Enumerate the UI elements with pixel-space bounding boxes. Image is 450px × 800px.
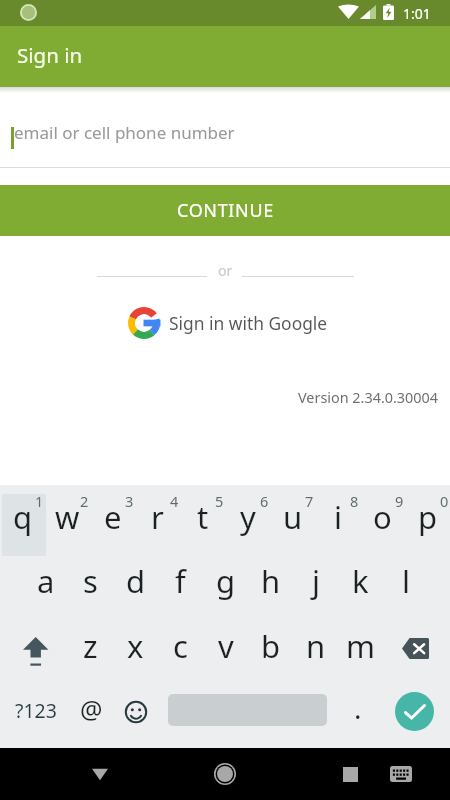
staticText: Sign in — [17, 41, 83, 69]
staticText: g — [216, 560, 236, 602]
staticText: 1:01 — [403, 4, 431, 23]
button[interactable]: Sign in with Google — [128, 307, 328, 339]
button[interactable]: i — [315, 482, 360, 552]
button[interactable]: r — [135, 482, 180, 552]
staticText: j — [312, 560, 320, 602]
staticText: t — [197, 496, 209, 538]
staticText: 6 — [260, 491, 269, 511]
button[interactable]: CONTINUE — [0, 185, 450, 236]
staticText: 1 — [35, 491, 44, 511]
staticText: Version 2.34.0.30004 — [298, 388, 439, 408]
button[interactable]: j — [293, 548, 338, 613]
staticText: z — [83, 625, 98, 667]
button[interactable]: Shift — [13, 613, 58, 678]
staticText: m — [346, 625, 375, 667]
staticText: Sign in with Google — [169, 311, 328, 335]
button[interactable]: t — [180, 482, 225, 552]
button[interactable]: Backspace — [390, 613, 438, 678]
staticText: l — [402, 560, 410, 602]
button[interactable]: z — [68, 613, 113, 678]
staticText: b — [261, 625, 281, 667]
staticText: 5 — [215, 491, 224, 511]
staticText: 4 — [170, 491, 179, 511]
button[interactable]: u — [270, 482, 315, 552]
staticText: u — [283, 496, 303, 538]
staticText: . — [354, 689, 362, 727]
staticText: p — [418, 496, 438, 538]
button[interactable]: p — [405, 482, 450, 552]
button[interactable]: Emoji — [114, 682, 158, 742]
button[interactable]: e — [90, 482, 135, 552]
staticText: s — [83, 560, 98, 602]
staticText: 0 — [440, 491, 449, 511]
staticText: @ — [80, 692, 103, 726]
staticText: or — [218, 261, 233, 280]
button[interactable]: Enter — [395, 692, 434, 731]
button[interactable]: v — [203, 613, 248, 678]
staticText: c — [173, 625, 188, 667]
button[interactable]: s — [68, 548, 113, 613]
staticText: h — [261, 560, 281, 602]
staticText: email or cell phone number — [14, 121, 235, 144]
staticText: e — [104, 496, 122, 538]
button[interactable]: ?123 — [13, 680, 59, 740]
button[interactable]: w — [45, 482, 90, 552]
staticText: a — [37, 560, 55, 602]
staticText: 9 — [395, 491, 404, 511]
staticText: v — [218, 625, 234, 667]
staticText: w — [55, 496, 80, 538]
button[interactable]: o — [360, 482, 405, 552]
button[interactable]: b — [248, 613, 293, 678]
button[interactable]: h — [248, 548, 293, 613]
button[interactable]: f — [158, 548, 203, 613]
button[interactable]: Switch keyboard — [378, 748, 424, 800]
button[interactable]: l — [383, 548, 428, 613]
staticText: i — [334, 496, 342, 538]
staticText: q — [13, 496, 33, 538]
button[interactable]: c — [158, 613, 203, 678]
staticText: n — [306, 625, 326, 667]
staticText: 3 — [125, 491, 134, 511]
button[interactable]: m — [338, 613, 383, 678]
staticText: k — [352, 560, 369, 602]
staticText: x — [127, 625, 144, 667]
button[interactable]: Recents — [325, 748, 375, 800]
button[interactable]: Hide keyboard — [75, 748, 125, 800]
staticText: o — [373, 496, 392, 538]
button[interactable]: y — [225, 482, 270, 552]
staticText: ?123 — [15, 697, 57, 724]
button[interactable]: @ — [69, 679, 113, 739]
staticText: 8 — [350, 491, 359, 511]
staticText: r — [151, 496, 164, 538]
button[interactable]: Home — [200, 748, 250, 800]
button[interactable]: a — [23, 548, 68, 613]
staticText: 7 — [305, 491, 314, 511]
button[interactable]: d — [113, 548, 158, 613]
button[interactable]: g — [203, 548, 248, 613]
staticText: y — [240, 496, 256, 538]
staticText: f — [175, 560, 186, 602]
staticText: 2 — [80, 491, 89, 511]
staticText: CONTINUE — [177, 198, 274, 223]
staticText: d — [126, 560, 146, 602]
button[interactable]: email or cell phone number — [0, 119, 450, 161]
button[interactable]: n — [293, 613, 338, 678]
button[interactable]: q — [0, 482, 45, 552]
button[interactable]: . — [337, 678, 379, 738]
button[interactable]: x — [113, 613, 158, 678]
button[interactable]: k — [338, 548, 383, 613]
